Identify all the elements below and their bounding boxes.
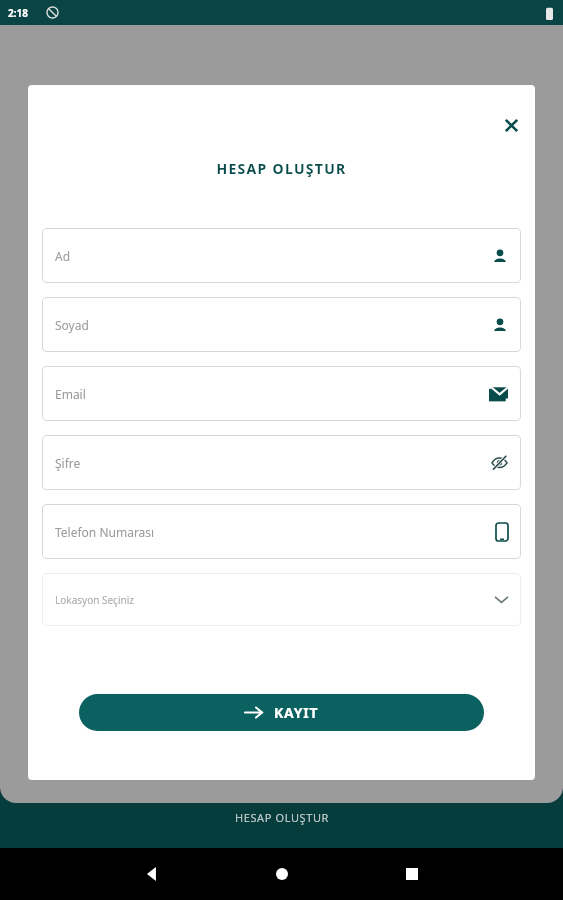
button[interactable]: Son uygulamalar [347,848,477,900]
staticText: Şifre [55,455,81,471]
button[interactable]: Geri [87,848,217,900]
button[interactable]: Şifre [42,435,521,490]
staticText: KAYIT [274,703,319,722]
staticText: Email [55,386,86,402]
button[interactable]: Kapat [495,109,527,141]
staticText: Soyad [55,317,89,333]
staticText: Ad [55,248,71,264]
button[interactable]: Soyad [42,297,521,352]
staticText: HESAP OLUŞTUR [28,159,535,178]
staticText: HESAP OLUŞTUR [235,810,329,825]
staticText: Lokasyon Seçiniz [55,593,134,607]
staticText: 2:18 [8,6,28,20]
button[interactable]: Ad [42,228,521,283]
staticText: Telefon Numarası [55,524,155,540]
button[interactable]: Ana ekran [217,848,347,900]
button[interactable]: Email [42,366,521,421]
button[interactable]: Telefon Numarası [42,504,521,559]
button[interactable]: Lokasyon Seçiniz [42,573,521,626]
button[interactable]: KAYIT [79,694,484,731]
